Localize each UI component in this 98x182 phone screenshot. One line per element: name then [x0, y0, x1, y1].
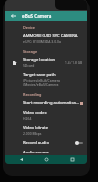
- staticText: Target save path: [23, 72, 56, 78]
- button[interactable]: Audio source: [5, 148, 87, 155]
- button[interactable]: Video bitrate: [5, 123, 87, 138]
- staticText: H264: [23, 116, 32, 121]
- button[interactable]: Record audio: [5, 138, 87, 148]
- staticText: Start recording automatically: [23, 100, 80, 106]
- button[interactable]: Back: [11, 155, 31, 164]
- button[interactable]: Video codec: [5, 108, 87, 123]
- button[interactable]: AMMORE (UID SYC CAMERA: [5, 31, 87, 46]
- button[interactable]: Back: [5, 11, 22, 21]
- staticText: SDcard: [23, 63, 35, 68]
- button[interactable]: Storage location: [5, 55, 87, 70]
- staticText: AMMORE (UID SYC CAMERA: [23, 33, 78, 39]
- button[interactable]: Start recording automatically: [5, 98, 87, 108]
- staticText: eUFC: 8100M3DA 3.0.0a: [23, 39, 61, 44]
- staticText: Storage: [23, 49, 38, 54]
- button[interactable]: Recents: [62, 155, 82, 164]
- staticText: eBuS Camera: [22, 13, 52, 19]
- staticText: 1.4 / 1.8 GB: [65, 61, 83, 65]
- staticText: Recording: [23, 92, 42, 97]
- staticText: Device: [23, 25, 35, 30]
- staticText: 2.000 Mbps: [23, 131, 42, 136]
- staticText: Storage location: [23, 57, 56, 63]
- staticText: /Pictures/eBuS/Camera /Movies/eBuS/Camer…: [23, 78, 60, 87]
- button[interactable]: Home: [36, 155, 56, 164]
- staticText: Video bitrate: [23, 125, 49, 131]
- button[interactable]: Target save path: [5, 70, 87, 89]
- staticText: Video codec: [23, 110, 47, 116]
- staticText: Audio source: [23, 150, 49, 153]
- staticText: Record audio: [23, 140, 49, 146]
